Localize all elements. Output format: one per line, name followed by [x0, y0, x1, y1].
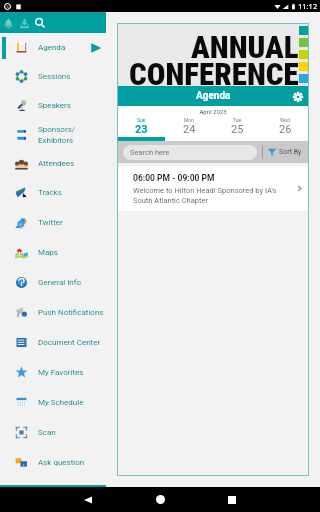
staticText: Sponsors/ Exhibitors [38, 125, 76, 145]
button[interactable]: Search here [123, 145, 257, 160]
staticText: Maps [38, 248, 58, 257]
button[interactable]: Sponsors/ Exhibitors [0, 120, 106, 149]
staticText: April 2023 [117, 108, 309, 115]
staticText: Scan [38, 428, 56, 437]
staticText: 26 [279, 123, 292, 136]
staticText: 06:00 PM - 09:00 PM [133, 173, 215, 183]
staticText: Tracks [38, 188, 62, 197]
staticText: Search here [130, 148, 170, 157]
button[interactable]: 06:00 PM - 09:00 PM [117, 166, 309, 211]
button[interactable]: Scan [0, 417, 106, 447]
staticText: Document Center [38, 338, 101, 347]
button[interactable]: Mon [165, 117, 213, 141]
button[interactable]: Push Notifications [0, 297, 106, 327]
staticText: 23 [135, 123, 148, 136]
staticText: 24 [183, 123, 196, 136]
staticText: Twitter [38, 218, 63, 227]
staticText: 25 [231, 123, 244, 136]
staticText: 11:12 [298, 1, 318, 11]
button[interactable]: Settings [291, 90, 304, 103]
staticText: Tue [233, 117, 242, 123]
staticText: Wed [280, 117, 290, 123]
button[interactable]: Search [32, 15, 48, 31]
staticText: Sun [137, 117, 146, 123]
staticText: Sessions [38, 72, 71, 81]
staticText: Sort By [279, 148, 302, 156]
staticText: Welcome to Hilton Head! Sponsored by IA'… [133, 186, 283, 205]
staticText: ANNUAL [191, 29, 299, 65]
button[interactable]: Tracks [0, 178, 106, 207]
staticText: My Schedule [38, 398, 84, 407]
staticText: Attendees [38, 159, 75, 168]
button[interactable]: Home [143, 487, 177, 512]
staticText: Speakers [38, 101, 71, 110]
staticText: Push Notifications [38, 308, 104, 317]
button[interactable]: Sort By [263, 147, 306, 157]
button[interactable]: Maps [0, 237, 106, 267]
staticText: My Favorites [38, 368, 84, 377]
staticText: General Info [38, 278, 82, 287]
staticText: Mon [184, 117, 194, 123]
button[interactable]: Wed [261, 117, 309, 141]
button[interactable]: Sun [117, 117, 165, 141]
button[interactable]: Download [16, 15, 32, 31]
button[interactable]: Attendees [0, 149, 106, 178]
button[interactable]: Notifications [0, 15, 16, 31]
button[interactable]: Back [71, 487, 105, 512]
button[interactable]: Twitter [0, 207, 106, 237]
button[interactable]: Agenda [0, 33, 106, 62]
button[interactable]: Speakers [0, 91, 106, 120]
staticText: Ask question [38, 458, 85, 467]
button[interactable]: Sessions [0, 62, 106, 91]
staticText: Agenda [196, 90, 231, 102]
button[interactable]: Document Center [0, 327, 106, 357]
staticText: Agenda [38, 43, 66, 52]
staticText: CONFERENCE [129, 56, 299, 92]
button[interactable]: Recents [215, 487, 249, 512]
button[interactable]: My Favorites [0, 357, 106, 387]
button[interactable]: Tue [213, 117, 261, 141]
button[interactable]: My Schedule [0, 387, 106, 417]
button[interactable]: Ask question [0, 447, 106, 477]
button[interactable]: General Info [0, 267, 106, 297]
